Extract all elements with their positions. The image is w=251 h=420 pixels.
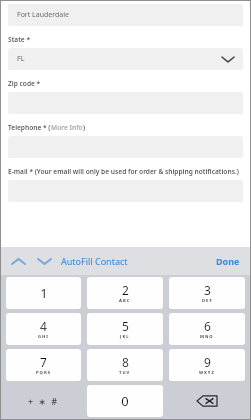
- staticText: ABC: [119, 298, 131, 304]
- button[interactable]: AutoFill Contact: [61, 255, 128, 267]
- button[interactable]: 1: [6, 277, 81, 309]
- button[interactable]: FL: [8, 48, 243, 70]
- button[interactable]: 6: [169, 313, 245, 345]
- staticText: E-mail * (Your email will only be used f…: [8, 167, 239, 176]
- staticText: TUV: [119, 370, 131, 376]
- staticText: MNO: [200, 334, 214, 340]
- staticText: 6: [204, 318, 211, 334]
- staticText: 3: [204, 282, 211, 298]
- staticText: AutoFill Contact: [61, 255, 128, 267]
- staticText: FL: [17, 54, 25, 64]
- button[interactable]: Previous field: [7, 250, 29, 272]
- staticText: GHI: [38, 334, 49, 340]
- button[interactable]: Backspace: [166, 383, 248, 419]
- staticText: 8: [122, 354, 129, 370]
- staticText: JKL: [120, 334, 130, 340]
- button[interactable]: 3: [169, 277, 245, 309]
- staticText: Done: [216, 255, 240, 267]
- staticText: More Info: [51, 123, 83, 132]
- staticText: ): [83, 123, 86, 132]
- staticText: WXYZ: [199, 370, 215, 376]
- staticText: DEF: [202, 298, 213, 304]
- staticText: Telephone * (: [8, 123, 51, 132]
- staticText: 4: [40, 318, 47, 334]
- button[interactable]: + ∗ #: [6, 385, 81, 417]
- button[interactable]: 8: [87, 349, 163, 381]
- staticText: 9: [204, 354, 211, 370]
- staticText: 5: [122, 318, 129, 334]
- button[interactable]: 2: [87, 277, 163, 309]
- staticText: Fort Lauderdale: [17, 10, 70, 20]
- staticText: 2: [122, 282, 129, 298]
- staticText: 0: [121, 392, 129, 410]
- staticText: State *: [8, 35, 31, 44]
- button[interactable]: 4: [6, 313, 81, 345]
- staticText: Zip code *: [8, 79, 41, 88]
- button[interactable]: Fort Lauderdale: [8, 4, 243, 26]
- button[interactable]: 0: [87, 385, 163, 417]
- button[interactable]: Next field: [33, 250, 55, 272]
- staticText: 7: [40, 354, 47, 370]
- staticText: PQRS: [36, 370, 51, 376]
- staticText: 1: [40, 284, 48, 302]
- button[interactable]: Done: [216, 255, 240, 267]
- button[interactable]: 7: [6, 349, 81, 381]
- button[interactable]: 5: [87, 313, 163, 345]
- button[interactable]: 9: [169, 349, 245, 381]
- staticText: + ∗ #: [28, 395, 59, 407]
